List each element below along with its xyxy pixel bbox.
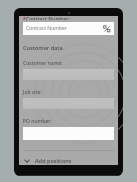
- button[interactable]: Scan contract number: [103, 25, 111, 33]
- staticText: Contract Number:: [26, 16, 70, 20]
- staticText: PO number:: [23, 118, 52, 125]
- button[interactable]: Contract Number: [23, 22, 114, 35]
- button[interactable]: Add positions: [23, 156, 114, 165]
- staticText: Contract Number: [26, 25, 103, 32]
- staticText: Job site:: [23, 89, 42, 96]
- staticText: Add positions: [35, 157, 72, 164]
- staticText: Customer data: [23, 44, 63, 51]
- staticText: Customer name:: [23, 60, 63, 67]
- staticText: *: [23, 16, 26, 20]
